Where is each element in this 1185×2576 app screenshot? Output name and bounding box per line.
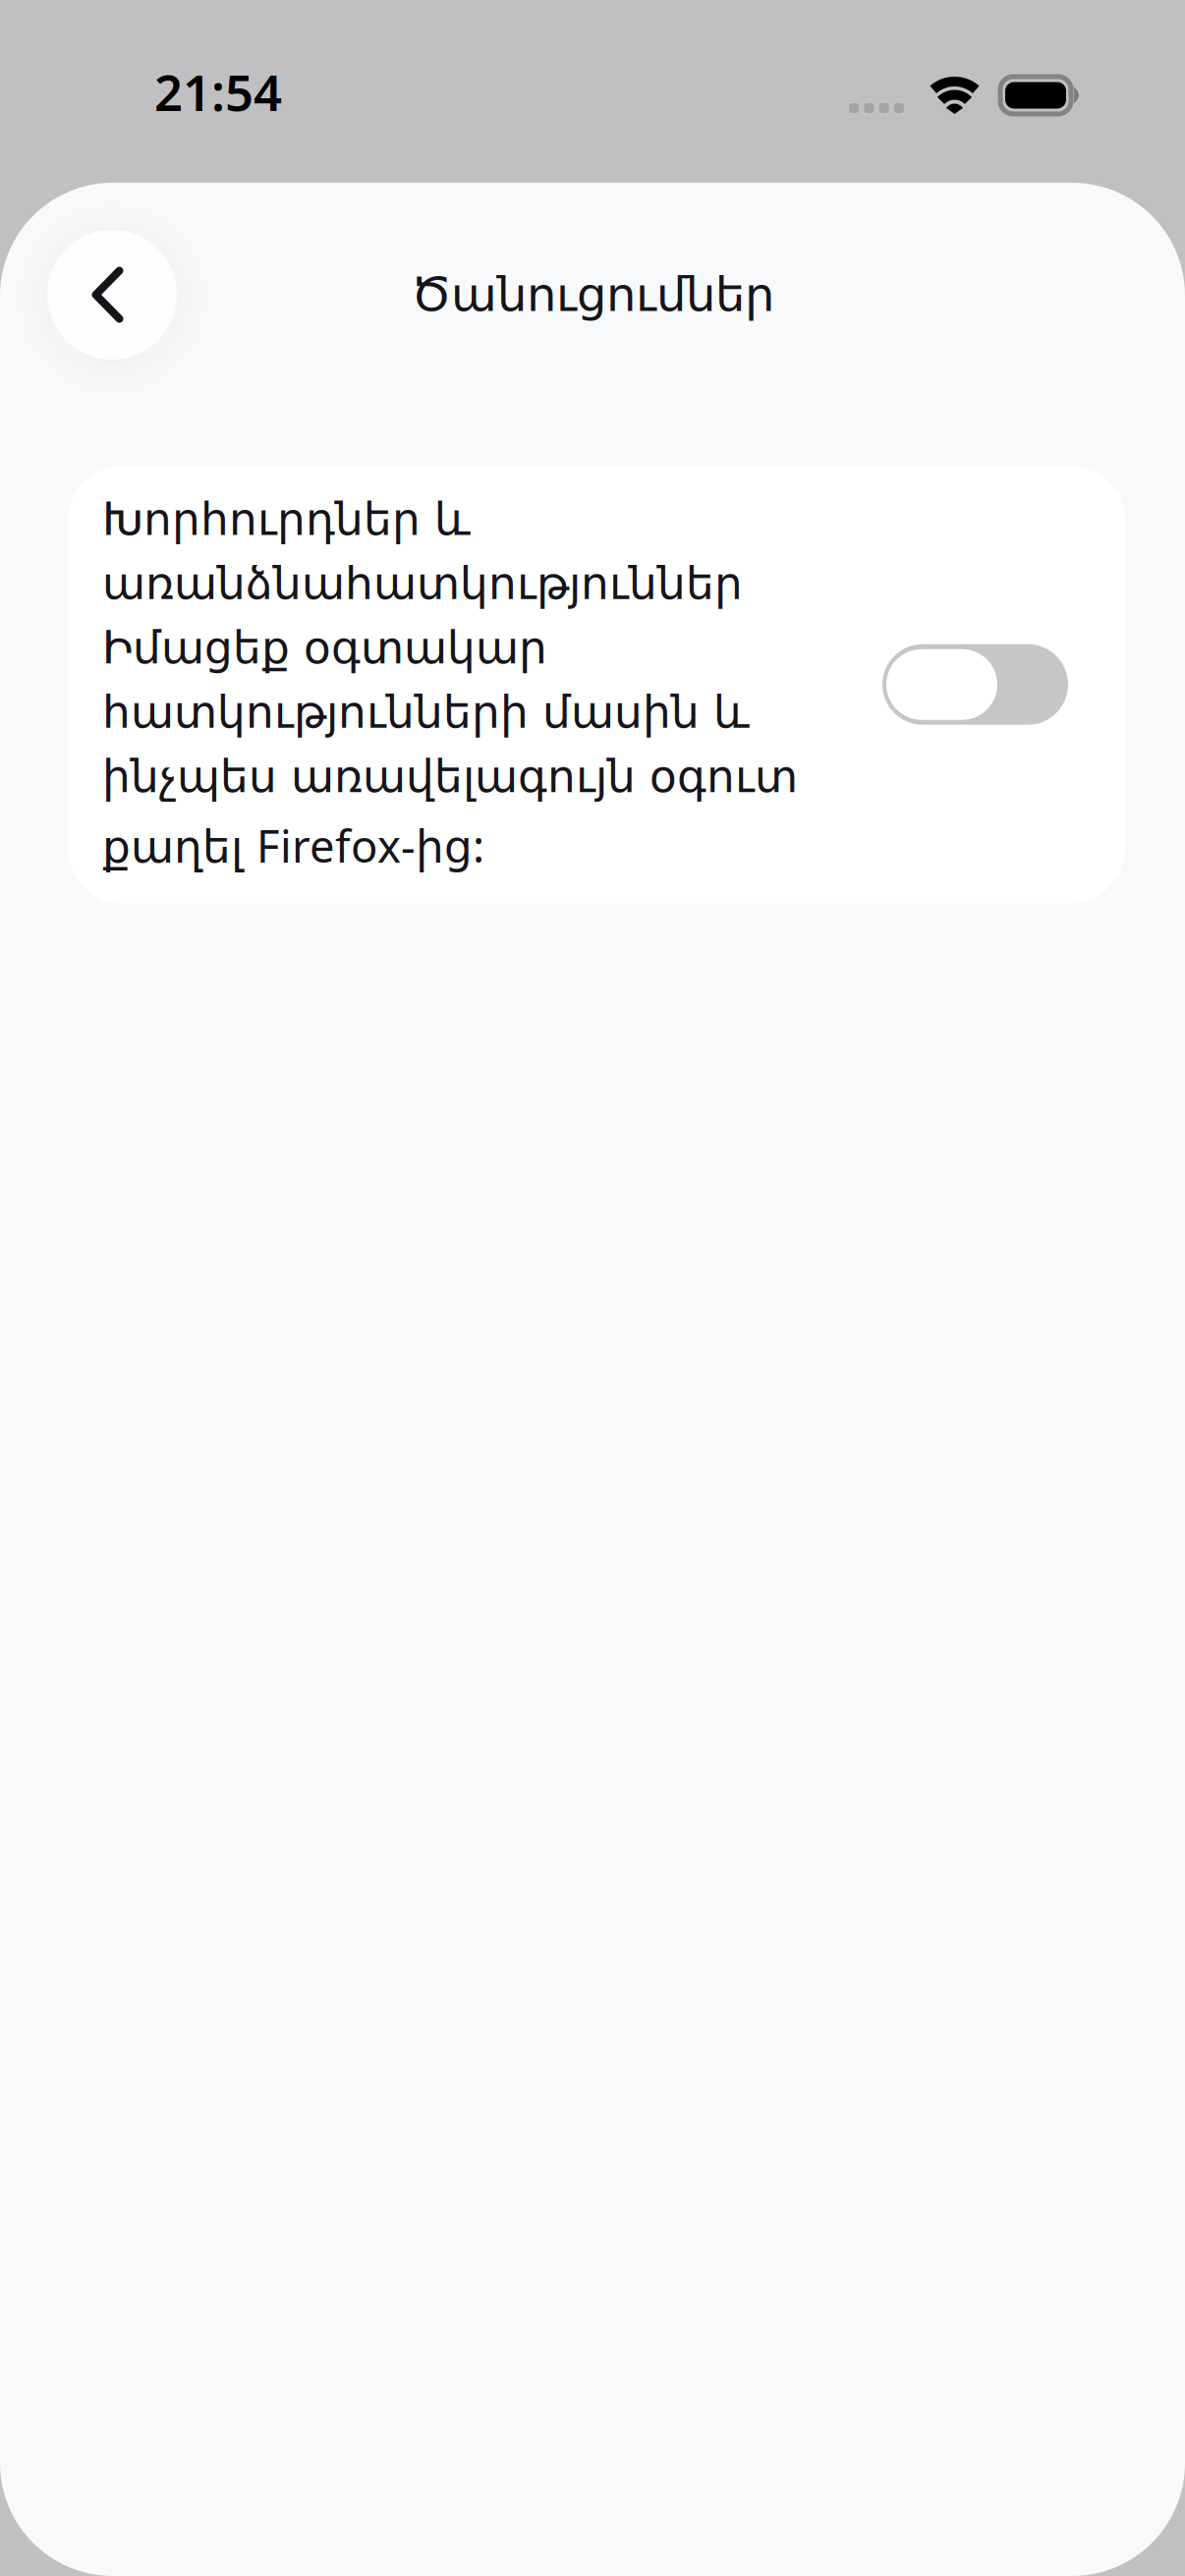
staticText: առանձնահատկություններ [102, 559, 743, 609]
staticText: Իմացեք օգտակար [102, 623, 547, 673]
button[interactable]: Tips and features notifications, off [882, 644, 1068, 725]
staticText: ինչպես առավելագույն օգուտ [102, 751, 798, 802]
button[interactable]: Խորհուրդներ և [68, 466, 1125, 903]
staticText: Ծանուցումներ [411, 268, 774, 322]
staticText: քաղել Firefox-ից: [102, 816, 484, 875]
staticText: Խորհուրդներ և [102, 494, 471, 545]
button[interactable]: Back [47, 230, 177, 360]
staticText: 21:54 [154, 59, 282, 125]
staticText: հատկությունների մասին և [102, 687, 750, 738]
